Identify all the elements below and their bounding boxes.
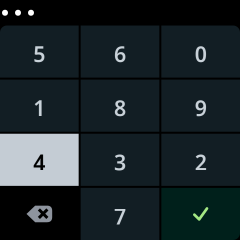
button[interactable]: 2 xyxy=(161,134,240,186)
button[interactable]: 3 xyxy=(81,134,159,186)
staticText: 4 xyxy=(33,148,45,176)
staticText: 1 xyxy=(33,94,45,122)
button[interactable]: 5 xyxy=(0,25,79,78)
button[interactable]: 6 xyxy=(81,25,159,78)
button[interactable]: 1 xyxy=(0,80,79,132)
staticText: 8 xyxy=(114,94,126,122)
button[interactable]: 7 xyxy=(81,188,159,240)
staticText: 7 xyxy=(114,202,126,230)
button[interactable]: 8 xyxy=(81,80,159,132)
staticText: 9 xyxy=(195,94,207,122)
staticText: 3 xyxy=(114,148,126,176)
staticText: 5 xyxy=(33,40,45,68)
button[interactable]: 9 xyxy=(161,80,240,132)
staticText: 6 xyxy=(114,40,126,68)
button[interactable]: Confirm xyxy=(161,188,240,240)
staticText: 2 xyxy=(195,148,207,176)
button[interactable]: 0 xyxy=(161,25,240,78)
button[interactable]: Delete xyxy=(0,188,79,240)
staticText: 0 xyxy=(195,40,207,68)
button[interactable]: 4 xyxy=(0,134,79,186)
